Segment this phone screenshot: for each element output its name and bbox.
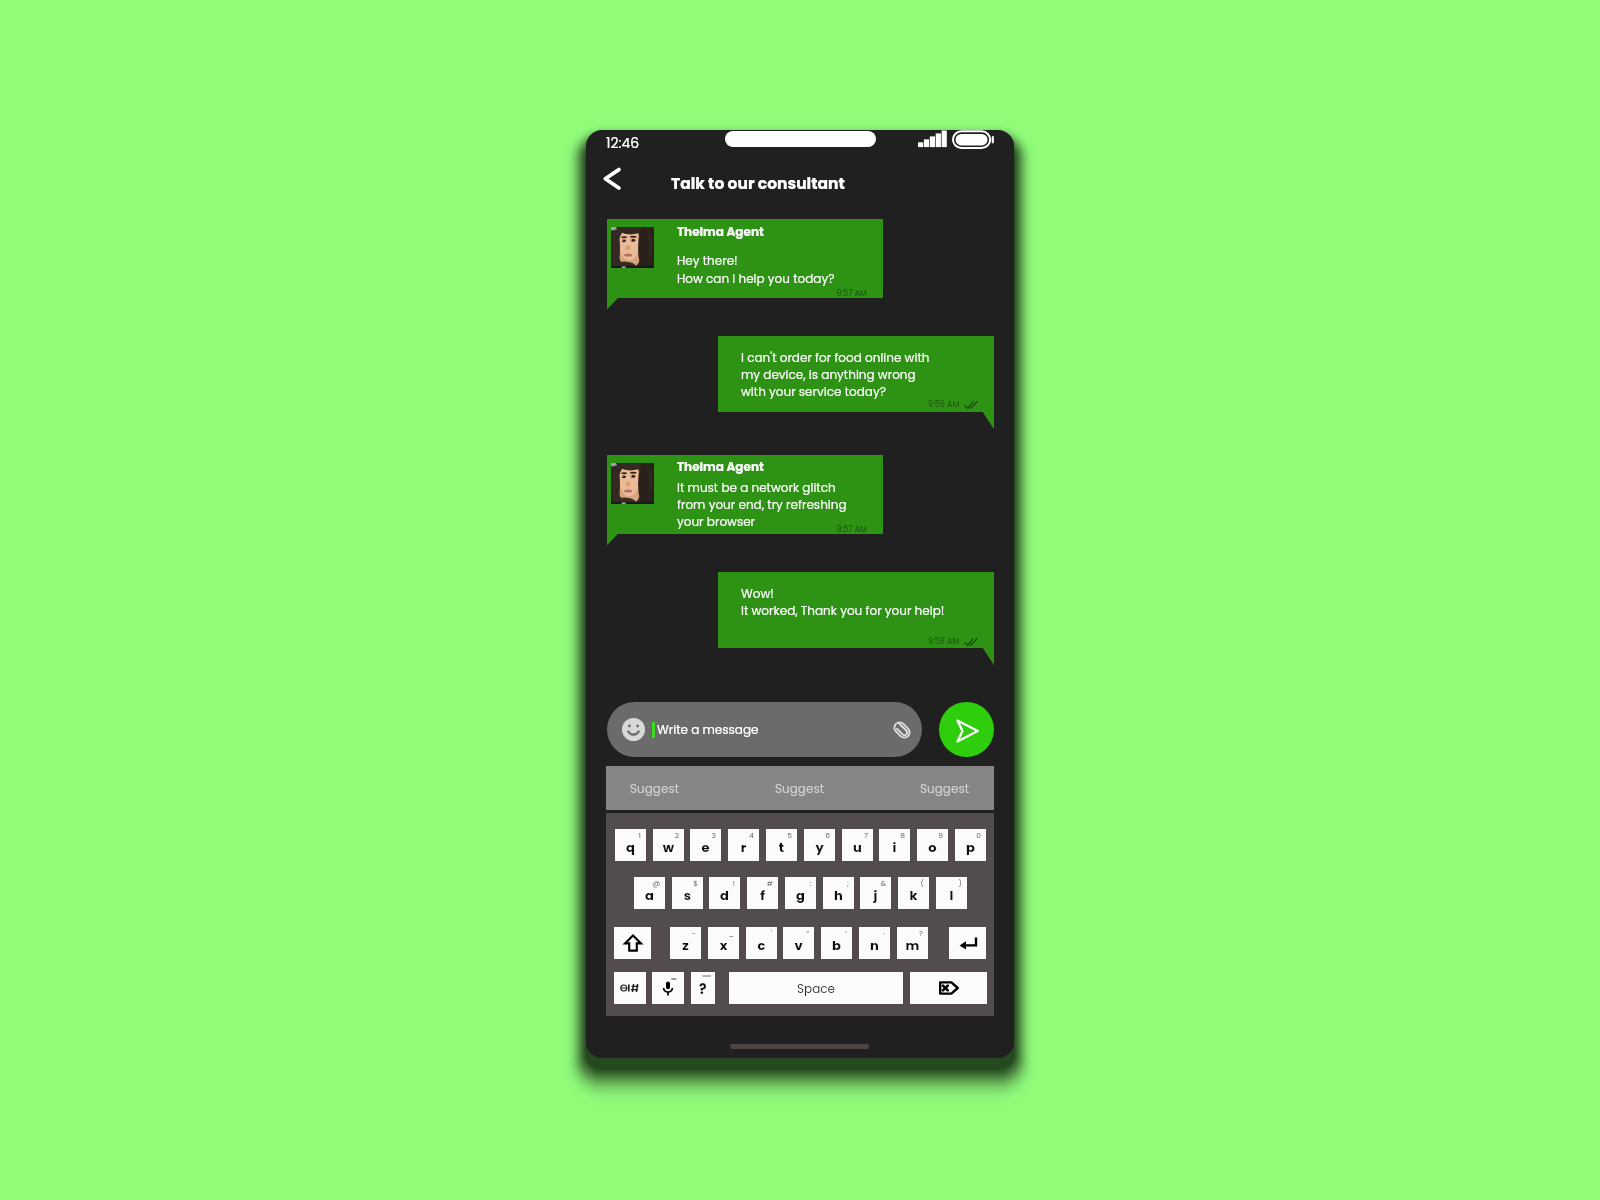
- staticText: g: [785, 886, 816, 904]
- staticText: f: [747, 886, 778, 904]
- button[interactable]: Back: [599, 163, 625, 195]
- button[interactable]: Write a message: [607, 702, 922, 757]
- staticText: b: [821, 936, 852, 954]
- staticText: 1: [620, 830, 641, 840]
- staticText: Thelma Agent: [677, 458, 764, 475]
- button[interactable]: ): [936, 877, 967, 909]
- staticText: It must be a network glitch: [677, 479, 836, 496]
- button[interactable]: :: [785, 877, 816, 909]
- button[interactable]: Voice input: [652, 972, 684, 1004]
- staticText: Write a message: [657, 721, 759, 738]
- button[interactable]: 8: [879, 829, 910, 861]
- staticText: ): [941, 878, 962, 888]
- staticText: $: [677, 878, 698, 888]
- staticText: 2: [658, 830, 679, 840]
- staticText: o: [917, 838, 948, 856]
- button[interactable]: Shift: [614, 927, 651, 959]
- button[interactable]: 2: [653, 829, 684, 861]
- staticText: v: [783, 936, 814, 954]
- button[interactable]: @: [634, 877, 665, 909]
- staticText: How can i help you today?: [677, 270, 835, 287]
- staticText: 9:56 AM: [928, 399, 960, 410]
- staticText: l: [936, 886, 967, 904]
- button[interactable]: &: [860, 877, 891, 909]
- staticText: h: [823, 886, 854, 904]
- button[interactable]: ': [746, 927, 777, 959]
- staticText: Space: [797, 980, 835, 997]
- staticText: ;: [828, 878, 849, 888]
- button[interactable]: ·: [859, 927, 890, 959]
- button[interactable]: (: [898, 877, 929, 909]
- staticText: Suggest: [775, 780, 825, 797]
- button[interactable]: 4: [728, 829, 759, 861]
- staticText: I can't order for food online with: [741, 349, 930, 366]
- staticText: ?: [902, 928, 923, 938]
- button[interactable]: -: [670, 927, 701, 959]
- staticText: x: [708, 936, 739, 954]
- staticText: m: [897, 936, 928, 954]
- button[interactable]: Enter: [949, 927, 986, 959]
- staticText: Suggest: [630, 780, 680, 797]
- staticText: It worked, Thank you for your help!: [741, 602, 945, 619]
- button[interactable]: Send message: [939, 702, 994, 757]
- staticText: Hey there!: [677, 252, 738, 269]
- staticText: 8: [884, 830, 905, 840]
- button[interactable]: Suggest: [750, 766, 850, 810]
- button[interactable]: 3: [690, 829, 721, 861]
- staticText: Talk to our consultant: [671, 173, 845, 195]
- staticText: 4: [733, 830, 754, 840]
- button[interactable]: Wow!: [718, 572, 994, 648]
- button[interactable]: 5: [766, 829, 797, 861]
- staticText: 9: [922, 830, 943, 840]
- staticText: !: [714, 878, 735, 888]
- button[interactable]: ’: [821, 927, 852, 959]
- staticText: y: [804, 838, 835, 856]
- button[interactable]: Punctuation: [691, 972, 715, 1004]
- button[interactable]: $: [672, 877, 703, 909]
- button[interactable]: ?: [897, 927, 928, 959]
- button[interactable]: !: [709, 877, 740, 909]
- staticText: d: [709, 886, 740, 904]
- staticText: ': [751, 928, 772, 938]
- staticText: ·: [864, 928, 885, 938]
- button[interactable]: ;: [823, 877, 854, 909]
- button[interactable]: ”: [783, 927, 814, 959]
- button[interactable]: 6: [804, 829, 835, 861]
- staticText: u: [842, 838, 873, 856]
- staticText: (: [903, 878, 924, 888]
- button[interactable]: Suggest: [895, 766, 995, 810]
- staticText: i: [879, 838, 910, 856]
- staticText: ”: [788, 928, 809, 938]
- staticText: a: [634, 886, 665, 904]
- button[interactable]: Thelma Agent: [607, 219, 883, 298]
- button[interactable]: I can't order for food online with: [718, 336, 994, 412]
- button[interactable]: Backspace: [910, 972, 987, 1004]
- button[interactable]: #: [747, 877, 778, 909]
- staticText: p: [955, 838, 986, 856]
- staticText: ’: [826, 928, 847, 938]
- staticText: @: [639, 878, 660, 888]
- button[interactable]: Thelma Agent: [607, 455, 883, 534]
- staticText: with your service today?: [741, 383, 886, 400]
- staticText: 12:46: [606, 133, 640, 153]
- button[interactable]: 9: [917, 829, 948, 861]
- button[interactable]: 1: [615, 829, 646, 861]
- staticText: _: [713, 928, 734, 938]
- button[interactable]: Space: [729, 972, 903, 1004]
- staticText: #: [752, 878, 773, 888]
- staticText: 3: [695, 830, 716, 840]
- staticText: z: [670, 936, 701, 954]
- staticText: j: [860, 886, 891, 904]
- button[interactable]: _: [708, 927, 739, 959]
- staticText: 7: [847, 830, 868, 840]
- staticText: s: [672, 886, 703, 904]
- button[interactable]: Symbols and emoji: [614, 972, 646, 1004]
- staticText: :: [790, 878, 811, 888]
- staticText: ?: [699, 979, 707, 999]
- staticText: 6: [809, 830, 830, 840]
- button[interactable]: 7: [842, 829, 873, 861]
- button[interactable]: 0: [955, 829, 986, 861]
- staticText: from your end, try refreshing: [677, 496, 847, 513]
- staticText: 9:57 AM: [807, 524, 867, 535]
- button[interactable]: Suggest: [605, 766, 705, 810]
